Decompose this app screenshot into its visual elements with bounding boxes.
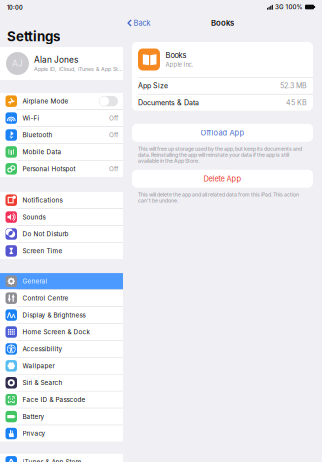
staticText: Settings [7, 29, 60, 44]
button[interactable]: Wallpaper [0, 358, 123, 374]
button[interactable]: Siri & Search [0, 375, 123, 391]
staticText: Off [109, 165, 118, 172]
staticText: 3G [275, 3, 284, 11]
staticText: Off [109, 114, 118, 122]
button[interactable]: Screen Time [0, 243, 123, 259]
staticText: Documents & Data [138, 99, 199, 107]
button[interactable]: AJ [0, 47, 123, 80]
staticText: Back [133, 19, 150, 27]
button[interactable]: Battery [0, 408, 123, 425]
staticText: 52.3 MB [280, 82, 307, 90]
button[interactable]: Bluetooth [0, 127, 123, 143]
button[interactable]: Control Centre [0, 290, 123, 306]
staticText: Battery [22, 413, 44, 420]
button[interactable]: Display & Brightness [0, 307, 123, 323]
staticText: Siri & Search [22, 379, 62, 386]
button[interactable]: Do Not Disturb [0, 226, 123, 242]
staticText: Control Centre [22, 294, 68, 302]
staticText: General [22, 278, 47, 285]
staticText: Mobile Data [22, 148, 61, 156]
staticText: Books [211, 19, 234, 27]
staticText: Airplane Mode [22, 97, 68, 105]
staticText: Privacy [22, 430, 45, 437]
staticText: This will free up storage used by the ap… [138, 146, 302, 164]
staticText: 45 KB [286, 99, 307, 107]
staticText: Wi-Fi [22, 114, 39, 122]
button[interactable]: Notifications [0, 192, 123, 208]
staticText: Home Screen & Dock [22, 328, 89, 336]
staticText: This will delete the app and all related… [138, 192, 299, 204]
staticText: Off [109, 131, 118, 139]
staticText: Display & Brightness [22, 311, 85, 319]
staticText: Offload App [200, 128, 244, 137]
button[interactable]: Home Screen & Dock [0, 324, 123, 340]
staticText: Sounds [22, 213, 45, 221]
staticText: Notifications [22, 196, 62, 204]
staticText: App Size [138, 82, 168, 90]
button[interactable]: Face ID & Passcode [0, 391, 123, 408]
button[interactable]: Accessibility [0, 341, 123, 357]
button[interactable]: Wi-Fi [0, 110, 123, 126]
button[interactable]: iTunes & App Store [0, 454, 123, 462]
button[interactable]: Personal Hotspot [0, 161, 123, 177]
staticText: Face ID & Passcode [22, 396, 85, 403]
button[interactable]: General [0, 273, 123, 289]
staticText: 100% [285, 3, 302, 11]
button[interactable]: Delete App [132, 170, 313, 188]
staticText: Personal Hotspot [22, 165, 75, 172]
button[interactable]: Offload App [132, 124, 313, 142]
staticText: Bluetooth [22, 131, 52, 139]
staticText: Do Not Disturb [22, 230, 68, 238]
staticText: Alan Jones [34, 55, 78, 64]
staticText: Books [165, 51, 186, 60]
button[interactable]: Privacy [0, 425, 123, 442]
staticText: AJ [12, 59, 23, 68]
staticText: iTunes & App Store [22, 458, 81, 462]
button[interactable]: Back [127, 17, 150, 29]
staticText: Apple Inc. [165, 61, 193, 68]
button[interactable]: Airplane Mode [0, 93, 123, 109]
button[interactable]: Sounds [0, 209, 123, 225]
staticText: Accessibility [22, 345, 62, 353]
staticText: Screen Time [22, 247, 62, 255]
staticText: Wallpaper [22, 362, 54, 369]
staticText: 10:00 [7, 5, 23, 11]
button[interactable]: Mobile Data [0, 144, 123, 160]
staticText: Apple ID, iCloud, iTunes & App St… [34, 66, 123, 72]
staticText: Delete App [203, 174, 241, 183]
